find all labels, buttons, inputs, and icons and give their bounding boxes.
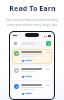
button[interactable]	[12, 49, 52, 64]
button[interactable]	[21, 75, 33, 78]
staticText: Read To Earn	[9, 4, 56, 14]
button[interactable]	[21, 59, 33, 62]
button[interactable]	[20, 41, 44, 46]
button[interactable]: Menu	[13, 41, 18, 46]
button[interactable]	[21, 92, 33, 95]
button[interactable]	[12, 66, 52, 80]
staticText: Earn coins while you read trending news …	[6, 18, 58, 27]
button[interactable]: Rewards	[46, 41, 51, 46]
button[interactable]	[12, 82, 52, 97]
